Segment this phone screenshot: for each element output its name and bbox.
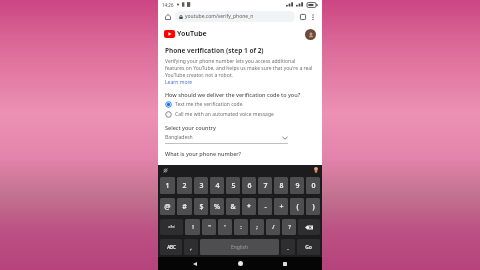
button[interactable]: % — [210, 198, 224, 215]
staticText: 7 — [263, 181, 268, 191]
button[interactable]: 3 — [194, 177, 208, 194]
staticText: 4 — [215, 181, 220, 191]
button[interactable]: English — [200, 239, 279, 255]
staticText: , — [190, 244, 192, 251]
button[interactable]: Account — [305, 29, 316, 40]
button[interactable]: Tabs — [297, 11, 308, 22]
staticText: ··· — [188, 2, 192, 7]
staticText: ( — [296, 202, 299, 212]
staticText: 2 — [182, 181, 187, 191]
staticText: 6 — [247, 181, 252, 191]
button[interactable]: 5 — [226, 177, 240, 194]
button[interactable]: 6 — [242, 177, 256, 194]
button[interactable]: Home — [162, 11, 174, 23]
staticText: Verifying your phone number lets you acc… — [165, 58, 315, 79]
staticText: # — [182, 202, 187, 212]
staticText: Text me the verification code — [175, 101, 243, 108]
button[interactable]: ! — [185, 219, 200, 235]
button[interactable]: Learn more — [165, 79, 193, 86]
staticText: Go — [305, 244, 312, 251]
button[interactable]: , — [184, 239, 198, 255]
staticText: =\< — [168, 224, 175, 230]
button[interactable]: 8 — [274, 177, 288, 194]
button[interactable]: 0 — [306, 177, 320, 194]
button[interactable]: * — [242, 198, 256, 215]
button[interactable]: Text me the verification code — [165, 101, 315, 108]
staticText: How should we deliver the verification c… — [165, 91, 301, 98]
staticText: $ — [199, 202, 204, 212]
staticText: ; — [256, 223, 258, 231]
staticText: Select your country — [165, 124, 216, 131]
staticText: 9 — [295, 181, 300, 191]
button[interactable]: Bangladesh — [165, 134, 288, 144]
button[interactable]: Recents — [277, 257, 293, 270]
button[interactable]: 7 — [258, 177, 272, 194]
staticText: . — [287, 244, 289, 251]
staticText: 0 — [311, 181, 316, 191]
staticText: 5 — [231, 181, 236, 191]
staticText: % — [214, 202, 220, 212]
staticText: @ — [164, 202, 171, 212]
button[interactable]: & — [226, 198, 240, 215]
staticText: 14:26 — [162, 2, 174, 8]
button[interactable]: 2 — [177, 177, 192, 194]
staticText: & — [230, 202, 236, 212]
button[interactable]: Keyboard settings — [161, 166, 169, 174]
button[interactable]: ( — [290, 198, 304, 215]
staticText: - — [264, 202, 267, 212]
staticText: Phone verification (step 1 of 2) — [165, 46, 264, 55]
button[interactable]: Call me with an automated voice message — [165, 111, 315, 118]
button[interactable]: More options — [308, 12, 318, 22]
staticText: " — [208, 223, 211, 231]
staticText: * — [247, 202, 251, 212]
button[interactable]: 1 — [160, 177, 175, 194]
button[interactable]: " — [202, 219, 216, 235]
button[interactable]: Go — [297, 239, 320, 255]
staticText: ABC — [167, 244, 176, 250]
button[interactable]: # — [177, 198, 192, 215]
staticText: YouTube — [177, 29, 207, 39]
button[interactable]: Backspace — [298, 219, 320, 235]
staticText: ) — [312, 202, 315, 212]
staticText: Bangladesh — [165, 134, 193, 141]
button[interactable]: YouTube — [164, 29, 207, 39]
staticText: youtube.com/verify_phone_n — [185, 13, 254, 20]
button[interactable]: 9 — [290, 177, 304, 194]
staticText: + — [279, 202, 284, 212]
staticText: / — [272, 223, 275, 231]
button[interactable]: @ — [160, 198, 175, 215]
button[interactable]: / — [266, 219, 280, 235]
staticText: : — [240, 223, 242, 231]
button[interactable]: + — [274, 198, 288, 215]
staticText: ! — [192, 223, 194, 231]
button[interactable]: Back — [187, 257, 203, 270]
staticText: Call me with an automated voice message — [175, 111, 274, 118]
button[interactable]: Home — [232, 257, 248, 270]
button[interactable]: 4 — [210, 177, 224, 194]
button[interactable]: . — [281, 239, 295, 255]
staticText: 1 — [165, 181, 170, 191]
staticText: 3 — [199, 181, 204, 191]
button[interactable]: ' — [218, 219, 232, 235]
button[interactable]: =\< — [160, 219, 183, 235]
button[interactable]: youtube.com/verify_phone_n — [175, 11, 295, 22]
staticText: ? — [288, 223, 291, 231]
button[interactable]: ; — [250, 219, 264, 235]
button[interactable]: - — [258, 198, 272, 215]
staticText: What is your phone number? — [165, 150, 242, 157]
button[interactable]: $ — [194, 198, 208, 215]
staticText: English — [231, 244, 249, 251]
staticText: ' — [224, 223, 226, 231]
button[interactable]: ABC — [160, 239, 182, 255]
button[interactable]: ? — [282, 219, 296, 235]
staticText: 8 — [279, 181, 284, 191]
button[interactable]: : — [234, 219, 248, 235]
button[interactable]: ) — [306, 198, 320, 215]
